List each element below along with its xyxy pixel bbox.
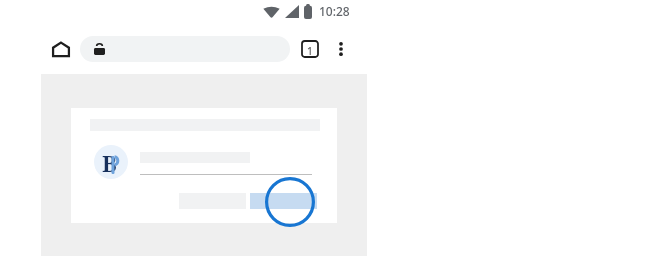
button[interactable]: More options bbox=[328, 36, 354, 62]
button[interactable]: Search or type URL bbox=[80, 36, 290, 62]
button[interactable]: Primary action bbox=[250, 193, 317, 209]
button[interactable]: Tabs bbox=[297, 36, 323, 62]
staticText: 10:28 bbox=[319, 3, 350, 19]
staticText: 1 bbox=[307, 44, 313, 58]
staticText: B bbox=[102, 148, 117, 178]
button[interactable]: Home bbox=[46, 34, 76, 64]
